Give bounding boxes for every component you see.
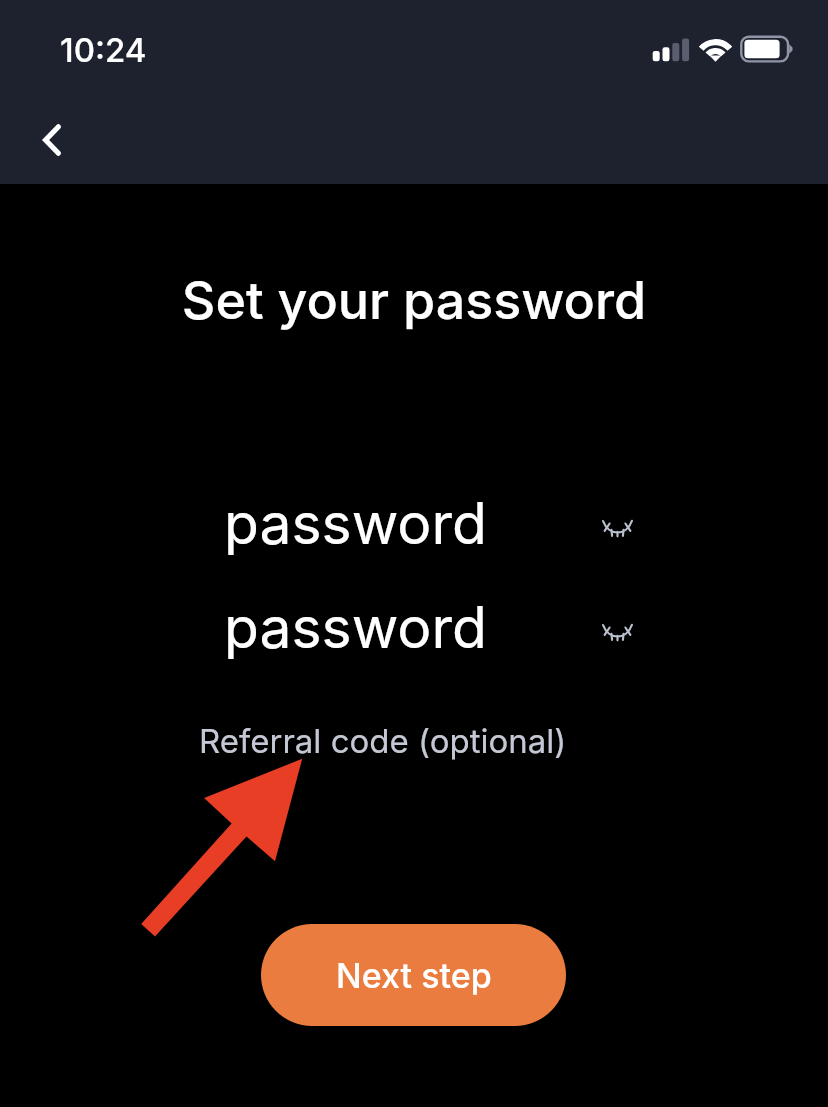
staticText: 10:24: [60, 30, 147, 70]
staticText: password: [224, 489, 487, 558]
staticText: Next step: [336, 955, 492, 996]
button[interactable]: Back: [14, 102, 90, 178]
button[interactable]: password: [224, 593, 554, 669]
button[interactable]: Show password: [582, 493, 652, 563]
button[interactable]: Referral code (optional): [199, 716, 571, 766]
staticText: password: [224, 593, 487, 662]
staticText: Referral code (optional): [199, 721, 567, 761]
button[interactable]: password: [224, 489, 554, 565]
button[interactable]: Show password: [582, 597, 652, 667]
button[interactable]: Next step: [261, 924, 566, 1026]
staticText: Set your password: [0, 269, 828, 332]
